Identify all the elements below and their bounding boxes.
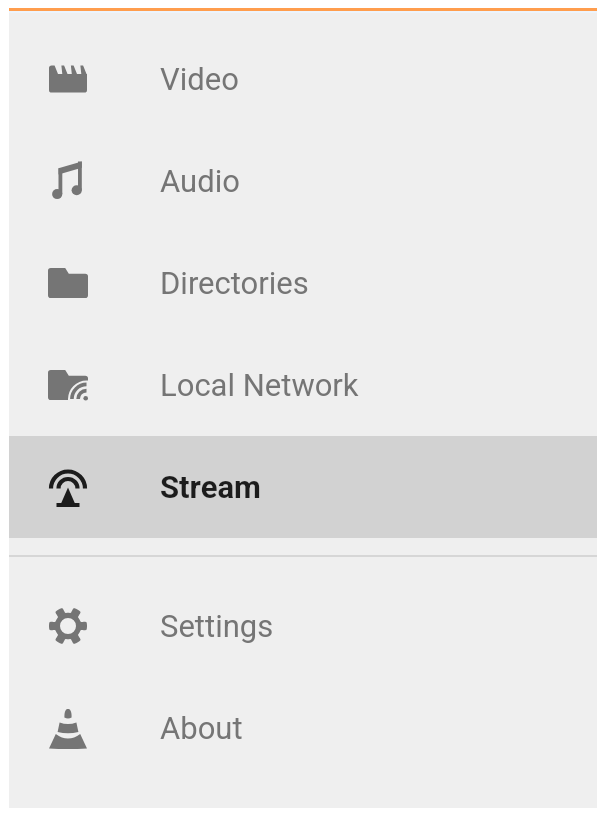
staticText: Video [160, 61, 239, 97]
button[interactable]: Video [9, 28, 597, 130]
button[interactable]: Local Network [9, 334, 597, 436]
staticText: Settings [160, 608, 274, 644]
button[interactable]: Directories [9, 232, 597, 334]
staticText: Directories [160, 265, 309, 301]
staticText: Local Network [160, 367, 359, 403]
staticText: Audio [160, 163, 240, 199]
button[interactable]: Audio [9, 130, 597, 232]
button[interactable]: Stream [9, 436, 597, 538]
button[interactable]: Settings [9, 575, 597, 677]
staticText: Stream [160, 469, 261, 505]
button[interactable]: About [9, 677, 597, 779]
staticText: About [160, 710, 243, 746]
